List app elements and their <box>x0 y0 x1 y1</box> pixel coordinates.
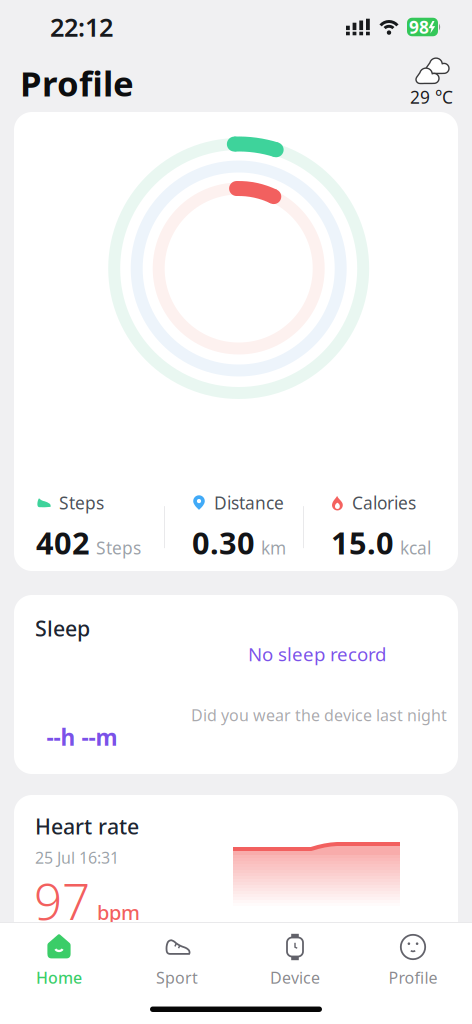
staticText: bpm <box>97 899 140 925</box>
staticText: kcal <box>400 536 431 559</box>
button[interactable]: Sport <box>118 933 236 988</box>
staticText: 29 °C <box>410 85 453 108</box>
staticText: Home <box>36 967 82 988</box>
button[interactable]: Heart rate <box>14 795 458 955</box>
staticText: 25 Jul 16:31 <box>35 847 119 868</box>
staticText: Profile <box>20 60 134 106</box>
staticText: Calories <box>352 491 416 514</box>
staticText: Steps <box>59 491 104 514</box>
staticText: km <box>261 536 286 559</box>
staticText: 402 <box>36 522 90 563</box>
button[interactable]: Home <box>0 933 118 988</box>
staticText: Profile <box>388 967 437 988</box>
staticText: Distance <box>214 491 284 514</box>
staticText: 97 <box>34 868 90 933</box>
staticText: 15.0 <box>331 522 394 563</box>
staticText: --h --m <box>46 722 117 752</box>
staticText: Device <box>270 967 320 988</box>
staticText: No sleep record <box>248 642 386 666</box>
staticText: Sleep <box>35 614 90 642</box>
button[interactable]: Sleep <box>14 595 458 774</box>
staticText: Sport <box>156 967 198 988</box>
staticText: Heart rate <box>35 812 139 840</box>
staticText: Steps <box>96 536 141 559</box>
button[interactable]: Device <box>236 933 354 988</box>
staticText: 98 <box>409 15 429 38</box>
button[interactable]: Profile <box>354 933 472 988</box>
staticText: Did you wear the device last night <box>191 704 447 726</box>
button[interactable]: Steps <box>14 112 458 571</box>
staticText: 0.30 <box>192 522 255 563</box>
staticText: 22:12 <box>50 10 113 44</box>
